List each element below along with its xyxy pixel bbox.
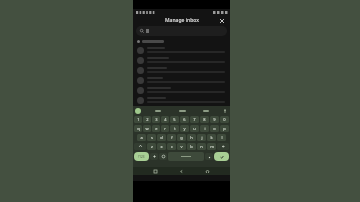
button[interactable]	[133, 75, 230, 85]
staticText: x	[160, 144, 163, 149]
button[interactable]: 5	[170, 116, 179, 123]
staticText: 1	[137, 117, 140, 122]
staticText: u	[193, 126, 196, 131]
staticText: 9	[213, 117, 216, 122]
button[interactable]: Voice input	[222, 108, 228, 114]
staticText: 5	[173, 117, 176, 122]
staticText: b	[190, 144, 193, 149]
staticText: o	[213, 126, 216, 131]
button[interactable]: Recents	[152, 168, 159, 175]
staticText: t	[174, 126, 176, 131]
staticText: n	[200, 144, 203, 149]
button[interactable]: p	[220, 125, 229, 132]
button[interactable]	[133, 85, 230, 95]
button[interactable]: n	[197, 143, 206, 150]
button[interactable]	[133, 55, 230, 65]
button[interactable]: g	[177, 134, 186, 141]
button[interactable]: m	[207, 143, 216, 150]
button[interactable]: z	[147, 143, 156, 150]
staticText: z	[151, 144, 153, 149]
staticText: v	[180, 144, 183, 149]
staticText: e	[155, 126, 158, 131]
button[interactable]: k	[207, 134, 216, 141]
button[interactable]: Symbols	[150, 153, 158, 160]
staticText: 3	[155, 117, 158, 122]
button[interactable]: Shift	[134, 143, 146, 150]
button[interactable]	[136, 26, 227, 36]
staticText: k	[210, 135, 213, 140]
button[interactable]: Enter	[214, 152, 229, 161]
staticText: 4	[164, 117, 167, 122]
button[interactable]: q	[134, 125, 142, 132]
button[interactable]: 8	[200, 116, 209, 123]
button[interactable]: b	[187, 143, 196, 150]
button[interactable]: s	[147, 134, 156, 141]
staticText: c	[171, 144, 173, 149]
staticText: ?123	[138, 155, 145, 159]
staticText: 0	[223, 117, 226, 122]
staticText: d	[160, 135, 163, 140]
button[interactable]: i	[200, 125, 209, 132]
button[interactable]: t	[170, 125, 179, 132]
button[interactable]: 2	[143, 116, 151, 123]
button[interactable]: c	[167, 143, 176, 150]
button[interactable]: 1	[134, 116, 142, 123]
staticText: p	[223, 126, 226, 131]
button[interactable]: Back	[178, 168, 185, 175]
staticText: 8	[203, 117, 206, 122]
staticText: q	[137, 126, 140, 131]
button[interactable]: r	[161, 125, 169, 132]
button[interactable]: d	[157, 134, 166, 141]
button[interactable]: Backspace	[217, 143, 229, 150]
button[interactable]: l	[217, 134, 226, 141]
button[interactable]: Emoji	[159, 153, 167, 160]
button[interactable]: Assistant	[135, 108, 141, 114]
button[interactable]: 0	[220, 116, 229, 123]
staticText: h	[190, 135, 193, 140]
button[interactable]	[133, 45, 230, 55]
button[interactable]	[133, 95, 230, 105]
button[interactable]: j	[197, 134, 206, 141]
button[interactable]	[174, 106, 190, 115]
button[interactable]: Space	[168, 152, 204, 161]
staticText: w	[145, 126, 149, 131]
button[interactable]: y	[180, 125, 189, 132]
staticText: Manage inbox	[165, 17, 199, 24]
button[interactable]	[151, 106, 165, 115]
button[interactable]: Close	[217, 16, 226, 25]
button[interactable]: h	[187, 134, 196, 141]
button[interactable]: v	[177, 143, 186, 150]
button[interactable]: 6	[180, 116, 189, 123]
button[interactable]: 7	[190, 116, 199, 123]
button[interactable]: 3	[152, 116, 160, 123]
button[interactable]	[199, 106, 213, 115]
staticText: f	[171, 135, 173, 140]
button[interactable]: 4	[161, 116, 169, 123]
staticText: a	[140, 135, 143, 140]
staticText: s	[151, 135, 153, 140]
button[interactable]: ?123	[134, 152, 149, 161]
staticText: y	[183, 126, 186, 131]
button[interactable]: a	[137, 134, 146, 141]
button[interactable]: f	[167, 134, 176, 141]
button[interactable]: w	[143, 125, 151, 132]
staticText: j	[201, 135, 203, 140]
staticText: g	[180, 135, 183, 140]
staticText: i	[204, 126, 206, 131]
button[interactable]: x	[157, 143, 166, 150]
staticText: 6	[183, 117, 186, 122]
staticText: 7	[193, 117, 196, 122]
button[interactable]: 9	[210, 116, 219, 123]
button[interactable]: e	[152, 125, 160, 132]
staticText: r	[164, 126, 166, 131]
staticText: 2	[146, 117, 149, 122]
button[interactable]: Home	[204, 168, 211, 175]
button[interactable]	[133, 65, 230, 75]
button[interactable]: o	[210, 125, 219, 132]
staticText: m	[210, 144, 214, 149]
staticText: l	[221, 135, 223, 140]
button[interactable]: Period	[205, 153, 213, 160]
button[interactable]: u	[190, 125, 199, 132]
